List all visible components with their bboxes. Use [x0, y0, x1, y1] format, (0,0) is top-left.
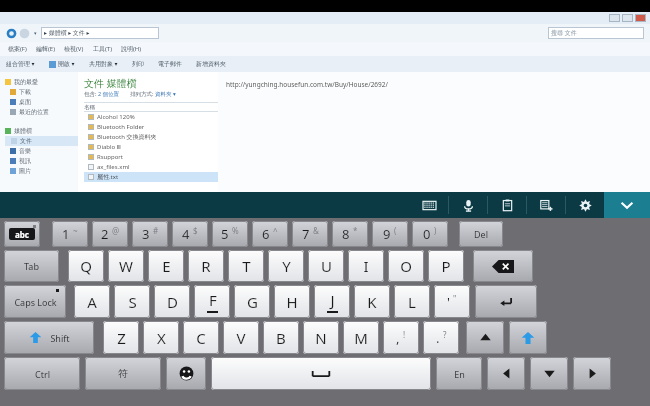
- staticText: E: [162, 256, 171, 276]
- button[interactable]: 音樂: [5, 146, 78, 156]
- button[interactable]: X: [143, 321, 179, 354]
- button[interactable]: H: [274, 285, 310, 318]
- button[interactable]: 7: [292, 221, 328, 247]
- button[interactable]: Cursor right: [573, 357, 611, 390]
- button[interactable]: Bluetooth Folder: [84, 122, 218, 132]
- button[interactable]: 2: [92, 221, 128, 247]
- button[interactable]: Switch to letters: [4, 221, 40, 247]
- staticText: G: [247, 292, 258, 312]
- staticText: I: [363, 256, 369, 276]
- button[interactable]: 桌面: [5, 97, 78, 107]
- button[interactable]: F: [194, 285, 230, 318]
- button[interactable]: D: [154, 285, 190, 318]
- button[interactable]: V: [223, 321, 259, 354]
- button[interactable]: Emoji: [166, 357, 206, 390]
- button[interactable]: B: [263, 321, 299, 354]
- staticText: http://yungching.housefun.com.tw/Buy/Hou…: [226, 80, 388, 89]
- button[interactable]: Cursor down: [530, 357, 568, 390]
- button[interactable]: 1: [52, 221, 88, 247]
- button[interactable]: 0: [412, 221, 448, 247]
- button[interactable]: Z: [103, 321, 139, 354]
- button[interactable]: Backspace: [473, 250, 533, 282]
- staticText: *: [353, 225, 358, 236]
- button[interactable]: W: [108, 250, 144, 282]
- button[interactable]: 8: [332, 221, 368, 247]
- button[interactable]: ,: [383, 321, 419, 354]
- button[interactable]: K: [354, 285, 390, 318]
- button[interactable]: N: [303, 321, 339, 354]
- button[interactable]: I: [348, 250, 384, 282]
- button[interactable]: Shift up: [509, 321, 547, 354]
- button[interactable]: U: [308, 250, 344, 282]
- button[interactable]: 9: [372, 221, 408, 247]
- staticText: &: [313, 225, 319, 236]
- button[interactable]: 媒體櫍: [5, 126, 78, 136]
- button[interactable]: P: [428, 250, 464, 282]
- button[interactable]: Bluetooth 交換資料夾: [84, 132, 218, 142]
- staticText: 5: [221, 225, 229, 243]
- button[interactable]: 下載: [5, 87, 78, 97]
- button[interactable]: J: [314, 285, 350, 318]
- button[interactable]: 3: [132, 221, 168, 247]
- staticText: Q: [80, 256, 92, 276]
- button[interactable]: Diablo Ⅲ: [84, 142, 218, 152]
- button[interactable]: Keyboard layout: [410, 192, 448, 218]
- button[interactable]: A: [74, 285, 110, 318]
- button[interactable]: Cursor left: [487, 357, 525, 390]
- button[interactable]: L: [394, 285, 430, 318]
- button[interactable]: E: [148, 250, 184, 282]
- button[interactable]: Alcohol 120%: [84, 112, 218, 122]
- staticText: Tab: [24, 260, 39, 272]
- staticText: Y: [282, 256, 291, 276]
- button[interactable]: 6: [252, 221, 288, 247]
- button[interactable]: M: [343, 321, 379, 354]
- button[interactable]: Y: [268, 250, 304, 282]
- button[interactable]: Voice input: [449, 192, 487, 218]
- button[interactable]: 視訊: [5, 156, 78, 166]
- button[interactable]: Del: [459, 221, 503, 247]
- staticText: #: [153, 225, 159, 236]
- button[interactable]: ax_files.xml: [84, 162, 218, 172]
- staticText: 我的最愛: [14, 78, 38, 86]
- button[interactable]: 屬性.txt: [84, 172, 218, 182]
- button[interactable]: Space: [211, 357, 431, 390]
- button[interactable]: 4: [172, 221, 208, 247]
- button[interactable]: ': [434, 285, 470, 318]
- button[interactable]: 5: [212, 221, 248, 247]
- staticText: 名稱: [84, 104, 95, 111]
- button[interactable]: Shift: [4, 321, 94, 354]
- button[interactable]: Clipboard: [488, 192, 526, 218]
- staticText: .: [436, 329, 440, 347]
- button[interactable]: En: [436, 357, 482, 390]
- button[interactable]: Hide keyboard: [604, 192, 650, 218]
- button[interactable]: Caps Lock: [4, 285, 66, 318]
- staticText: 桌面: [19, 98, 31, 106]
- button[interactable]: .: [423, 321, 459, 354]
- button[interactable]: Rsupport: [84, 152, 218, 162]
- button[interactable]: R: [188, 250, 224, 282]
- button[interactable]: Tab: [4, 250, 59, 282]
- button[interactable]: 圖片: [5, 166, 78, 176]
- staticText: ax_files.xml: [97, 163, 130, 171]
- staticText: J: [330, 290, 335, 310]
- button[interactable]: 符: [85, 357, 161, 390]
- button[interactable]: T: [228, 250, 264, 282]
- staticText: Bluetooth 交換資料夾: [97, 133, 157, 141]
- button[interactable]: Cursor up: [466, 321, 504, 354]
- staticText: M: [354, 328, 368, 348]
- button[interactable]: 我的最愛: [5, 77, 78, 87]
- button[interactable]: Q: [68, 250, 104, 282]
- staticText: Bluetooth Folder: [97, 123, 145, 131]
- button[interactable]: O: [388, 250, 424, 282]
- button[interactable]: G: [234, 285, 270, 318]
- button[interactable]: Ctrl: [4, 357, 80, 390]
- button[interactable]: New note: [527, 192, 565, 218]
- button[interactable]: Settings: [566, 192, 604, 218]
- staticText: 編輯(E): [36, 45, 55, 53]
- staticText: 3: [142, 225, 150, 243]
- button[interactable]: 最近的位置: [5, 107, 78, 117]
- button[interactable]: Enter: [475, 285, 537, 318]
- button[interactable]: S: [114, 285, 150, 318]
- button[interactable]: C: [183, 321, 219, 354]
- staticText: 列印: [132, 60, 144, 68]
